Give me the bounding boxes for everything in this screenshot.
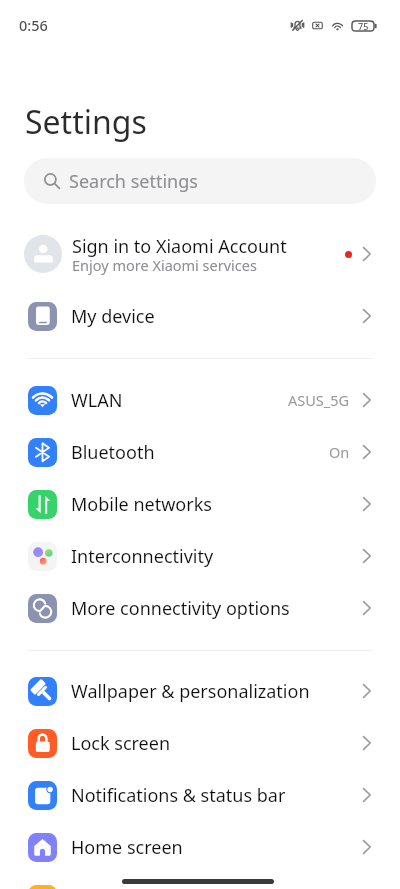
staticText: WLAN <box>71 388 288 413</box>
button[interactable]: More connectivity options <box>0 582 400 634</box>
button[interactable]: Sign in to Xiaomi Account <box>0 223 400 285</box>
button[interactable]: Home screen <box>0 821 400 873</box>
staticText: More connectivity options <box>71 596 360 621</box>
staticText: My device <box>71 304 360 329</box>
button[interactable]: Wallpaper & personalization <box>0 665 400 717</box>
staticText: Bluetooth <box>71 440 329 465</box>
staticText: Interconnectivity <box>71 544 360 569</box>
button[interactable]: WLAN <box>0 374 400 426</box>
staticText: Home screen <box>71 835 360 860</box>
button[interactable]: Notifications & status bar <box>0 769 400 821</box>
staticText: Enjoy more Xiaomi services <box>72 255 257 275</box>
button[interactable]: Lock screen <box>0 717 400 769</box>
staticText: Sign in to Xiaomi Account <box>72 234 287 259</box>
staticText: Settings <box>25 100 147 144</box>
staticText: Search settings <box>69 169 198 194</box>
staticText: ASUS_5G <box>288 390 350 410</box>
staticText: Wallpaper & personalization <box>71 679 360 704</box>
button[interactable]: Display <box>0 873 400 889</box>
button[interactable]: Bluetooth <box>0 426 400 478</box>
staticText: Lock screen <box>71 731 360 756</box>
button[interactable]: Interconnectivity <box>0 530 400 582</box>
staticText: 75 <box>358 20 369 32</box>
staticText: Mobile networks <box>71 492 360 517</box>
button[interactable]: Search settings <box>24 158 376 204</box>
staticText: On <box>329 442 350 462</box>
button[interactable]: Mobile networks <box>0 478 400 530</box>
staticText: Notifications & status bar <box>71 783 360 808</box>
button[interactable]: My device <box>0 290 400 342</box>
staticText: 0:56 <box>19 15 48 35</box>
